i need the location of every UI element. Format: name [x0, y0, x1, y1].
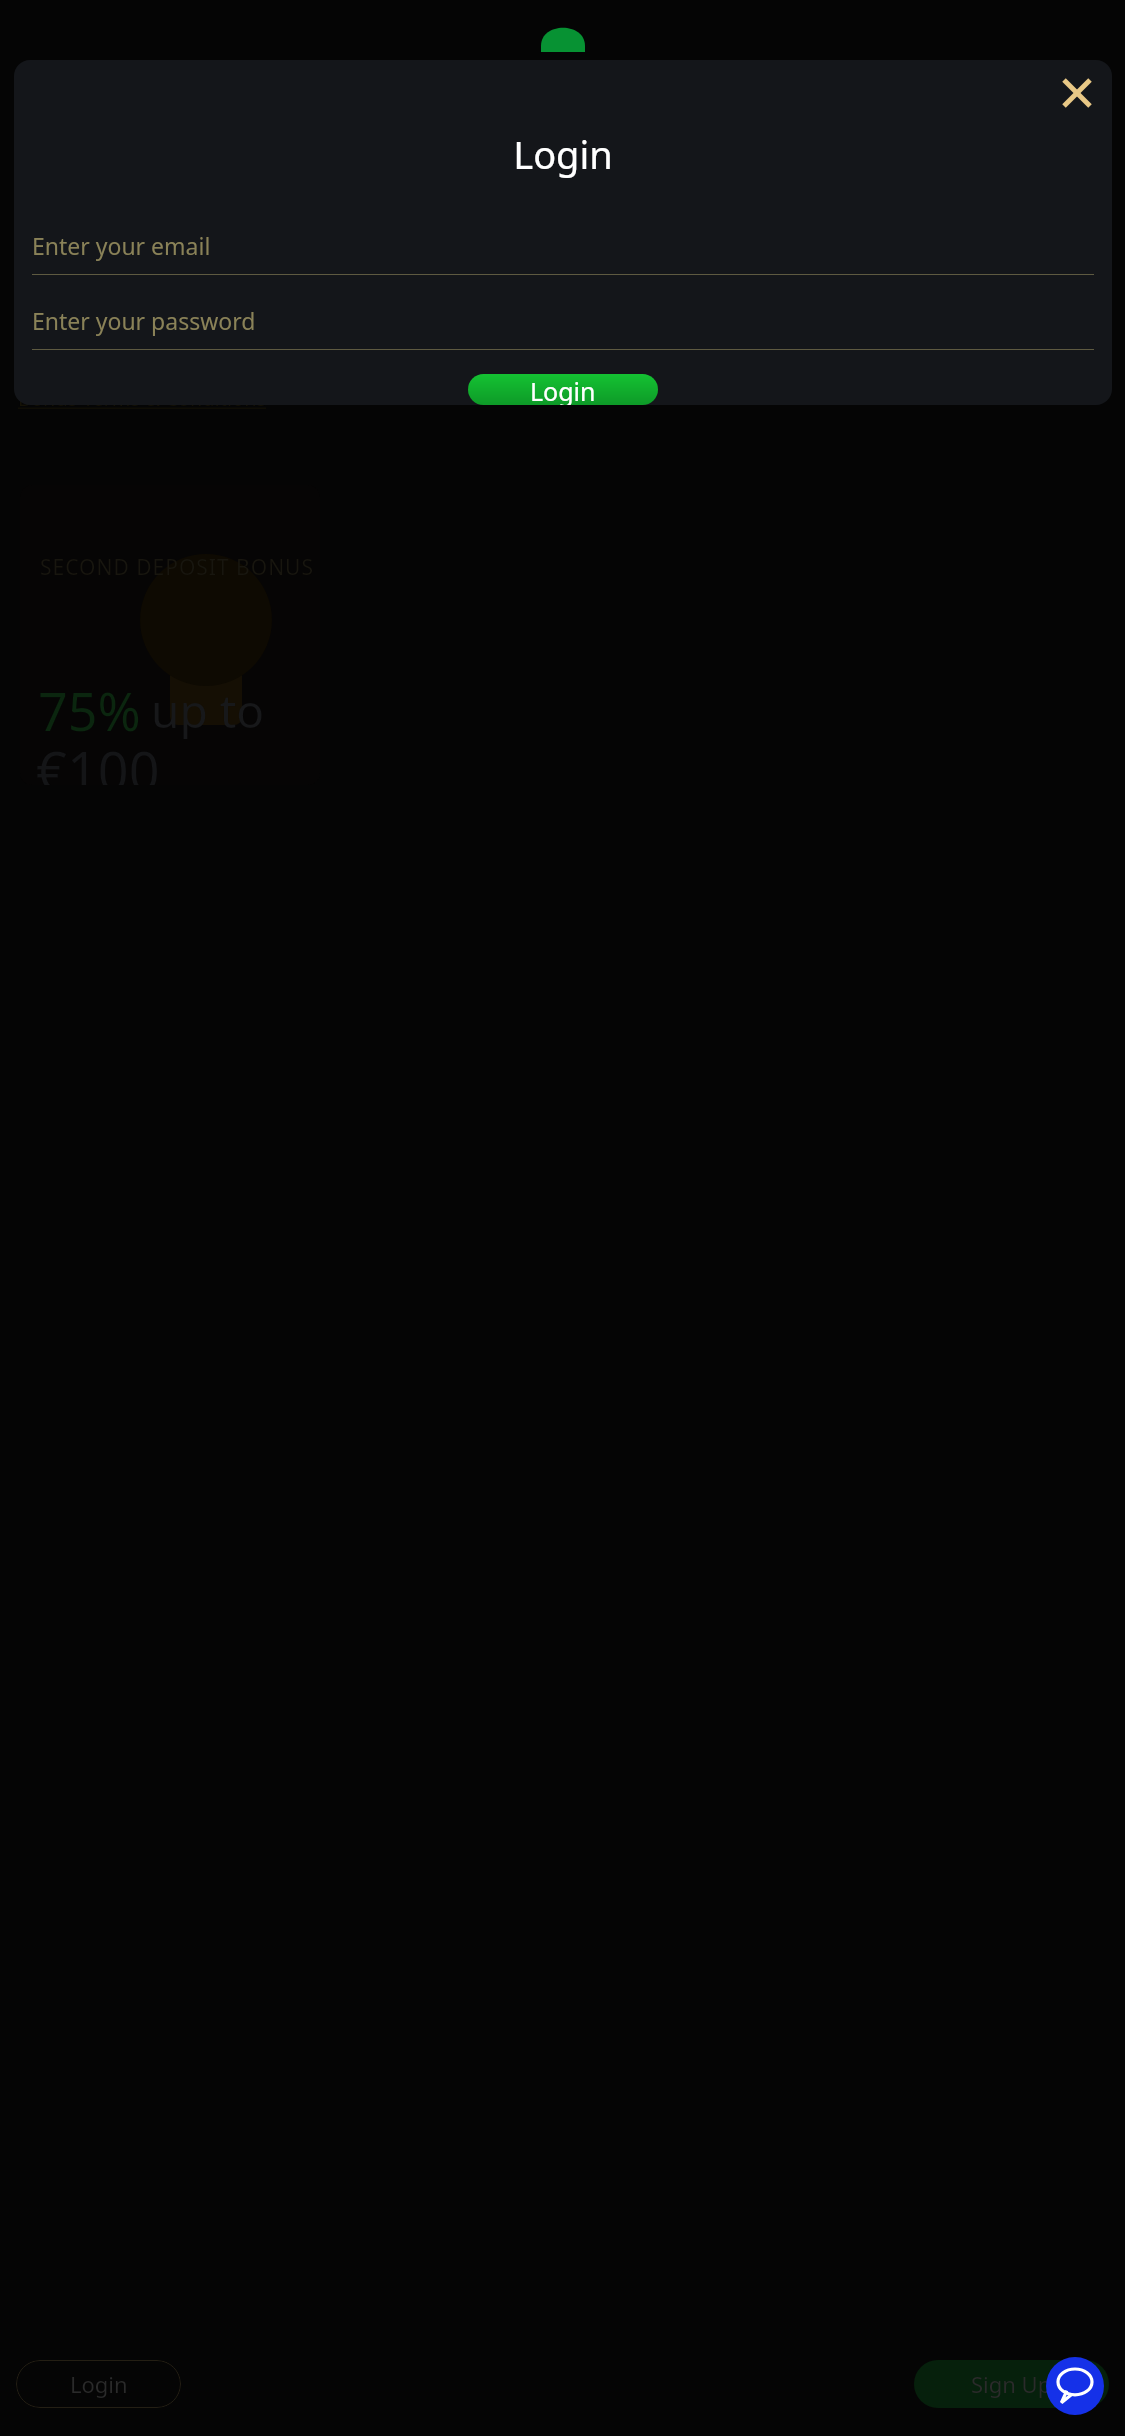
staticText: Bonus Terms & Conditions — [18, 385, 267, 412]
button[interactable]: Close — [1048, 64, 1106, 122]
staticText: Login — [14, 128, 1112, 180]
button[interactable]: Search — [120, 44, 212, 136]
staticText: Enter your email — [32, 230, 211, 261]
button[interactable]: Enter your email — [32, 230, 1094, 275]
staticText: 75% — [38, 675, 141, 746]
staticText: SECOND DEPOSIT BONUS — [40, 553, 314, 582]
button[interactable]: Menu — [22, 44, 118, 136]
staticText: Login — [530, 374, 596, 405]
button[interactable]: Katsubet home — [482, 30, 643, 89]
staticText: up to — [151, 679, 265, 742]
button[interactable]: Enter your password — [32, 305, 1094, 350]
staticText: Enter your password — [32, 305, 256, 336]
button[interactable]: Open chat — [1046, 2357, 1104, 2415]
staticText: Login — [70, 2369, 128, 2399]
button[interactable]: Login — [468, 374, 658, 405]
staticText: KATSUBET — [488, 54, 637, 89]
staticText: Sign Up — [971, 2369, 1052, 2399]
button[interactable]: Sign Up — [914, 2360, 1109, 2408]
staticText: €100 — [36, 733, 160, 785]
button[interactable]: Login — [16, 2360, 181, 2408]
